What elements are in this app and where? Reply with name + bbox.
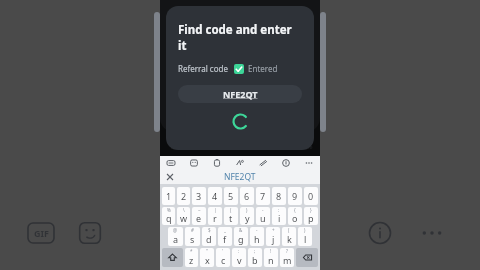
staticText: 5 — [228, 190, 234, 202]
button[interactable]: : — [272, 207, 286, 225]
button[interactable]: Info — [368, 221, 392, 245]
staticText: NFE2QT — [224, 171, 256, 183]
button[interactable]: NFE2QT — [178, 85, 302, 103]
button[interactable]: Spin — [225, 128, 255, 151]
button[interactable]: Expand — [164, 171, 176, 183]
button[interactable]: \ — [177, 207, 190, 225]
staticText: f — [223, 233, 227, 245]
staticText: _ — [224, 227, 226, 233]
button[interactable]: : — [232, 248, 246, 267]
button[interactable]: 6 — [240, 187, 254, 205]
button[interactable]: ! — [264, 248, 278, 267]
button[interactable]: 3 — [192, 187, 206, 205]
staticText: x — [205, 254, 210, 266]
button[interactable]: ; — [248, 248, 262, 267]
staticText: ! — [270, 248, 272, 254]
button[interactable]: _ — [218, 227, 232, 246]
staticText: k — [287, 233, 292, 245]
staticText: s — [190, 233, 195, 245]
button[interactable]: Clipboard — [160, 156, 182, 170]
button[interactable]: " — [200, 248, 214, 267]
staticText: ? — [286, 248, 288, 254]
button[interactable]: 4 — [208, 187, 222, 205]
button[interactable]: Main — [162, 128, 192, 151]
staticText: g — [238, 233, 244, 245]
button[interactable]: GIF — [28, 223, 54, 243]
staticText: * — [190, 248, 193, 254]
button[interactable]: Handwriting — [251, 156, 274, 170]
staticText: ( — [288, 227, 290, 233]
staticText: GIF — [34, 227, 49, 239]
staticText: 1 — [166, 190, 172, 202]
staticText: c — [221, 254, 226, 266]
button[interactable]: NFE2QT — [160, 170, 320, 184]
staticText: w — [180, 212, 188, 224]
staticText: 3 — [196, 190, 202, 202]
staticText: 8 — [276, 190, 282, 202]
staticText: Inventory — [258, 143, 286, 151]
staticText: 4 — [212, 190, 218, 202]
button[interactable]: Notes — [205, 156, 228, 170]
staticText: @ — [173, 227, 178, 233]
button[interactable]: } — [304, 207, 318, 225]
button[interactable]: Earn — [193, 128, 223, 151]
button[interactable]: 2 — [177, 187, 190, 205]
button[interactable]: More options — [420, 225, 444, 241]
button[interactable]: Translate — [228, 156, 251, 170]
staticText: NFE2QT — [223, 88, 258, 100]
button[interactable]: * — [185, 248, 198, 267]
button[interactable]: ( — [224, 207, 238, 225]
button[interactable]: 9 — [288, 187, 302, 205]
button[interactable]: + — [266, 227, 280, 246]
button[interactable]: # — [185, 227, 200, 246]
staticText: Spin — [234, 143, 247, 151]
button[interactable]: 7 — [256, 187, 270, 205]
staticText: % — [167, 207, 171, 213]
staticText: 2 — [181, 190, 187, 202]
button[interactable]: - — [250, 227, 264, 246]
staticText: t — [229, 212, 233, 224]
button[interactable]: Shift — [162, 248, 183, 267]
staticText: : — [278, 207, 280, 213]
staticText: j — [272, 233, 275, 245]
staticText: | — [214, 207, 217, 213]
button[interactable]: Entered — [234, 64, 244, 74]
button[interactable]: ? — [280, 248, 294, 267]
button[interactable]: | — [208, 207, 222, 225]
staticText: h — [254, 233, 260, 245]
button[interactable]: % — [162, 207, 175, 225]
button[interactable]: Profile — [288, 128, 318, 151]
button[interactable]: More — [297, 156, 320, 170]
staticText: - — [262, 207, 264, 213]
staticText: Find code and enter it — [178, 22, 302, 54]
staticText: o — [292, 212, 298, 224]
staticText: # — [191, 227, 194, 233]
button[interactable]: Inventory — [257, 128, 287, 151]
button[interactable]: @ — [168, 227, 183, 246]
button[interactable]: { — [288, 207, 302, 225]
staticText: } — [310, 207, 312, 213]
staticText: u — [260, 212, 266, 224]
staticText: Main — [170, 143, 185, 151]
staticText: \ — [183, 207, 185, 213]
button[interactable]: 1 — [162, 187, 175, 205]
staticText: n — [268, 254, 274, 266]
button[interactable]: 0 — [304, 187, 318, 205]
button[interactable]: ) — [240, 207, 254, 225]
staticText: v — [237, 254, 242, 266]
button[interactable]: ) — [298, 227, 312, 246]
button[interactable]: ~ — [192, 207, 206, 225]
button[interactable]: 5 — [224, 187, 238, 205]
button[interactable]: Sticker — [182, 156, 205, 170]
button[interactable]: ' — [216, 248, 230, 267]
button[interactable]: 8 — [272, 187, 286, 205]
staticText: ; — [254, 248, 256, 254]
button[interactable]: - — [256, 207, 270, 225]
button[interactable]: Sticker — [78, 221, 102, 245]
button[interactable]: $ — [202, 227, 216, 246]
button[interactable]: Delete — [296, 248, 318, 267]
button[interactable]: Settings — [274, 156, 297, 170]
button[interactable]: & — [234, 227, 248, 246]
staticText: i — [278, 212, 281, 224]
button[interactable]: ( — [282, 227, 296, 246]
